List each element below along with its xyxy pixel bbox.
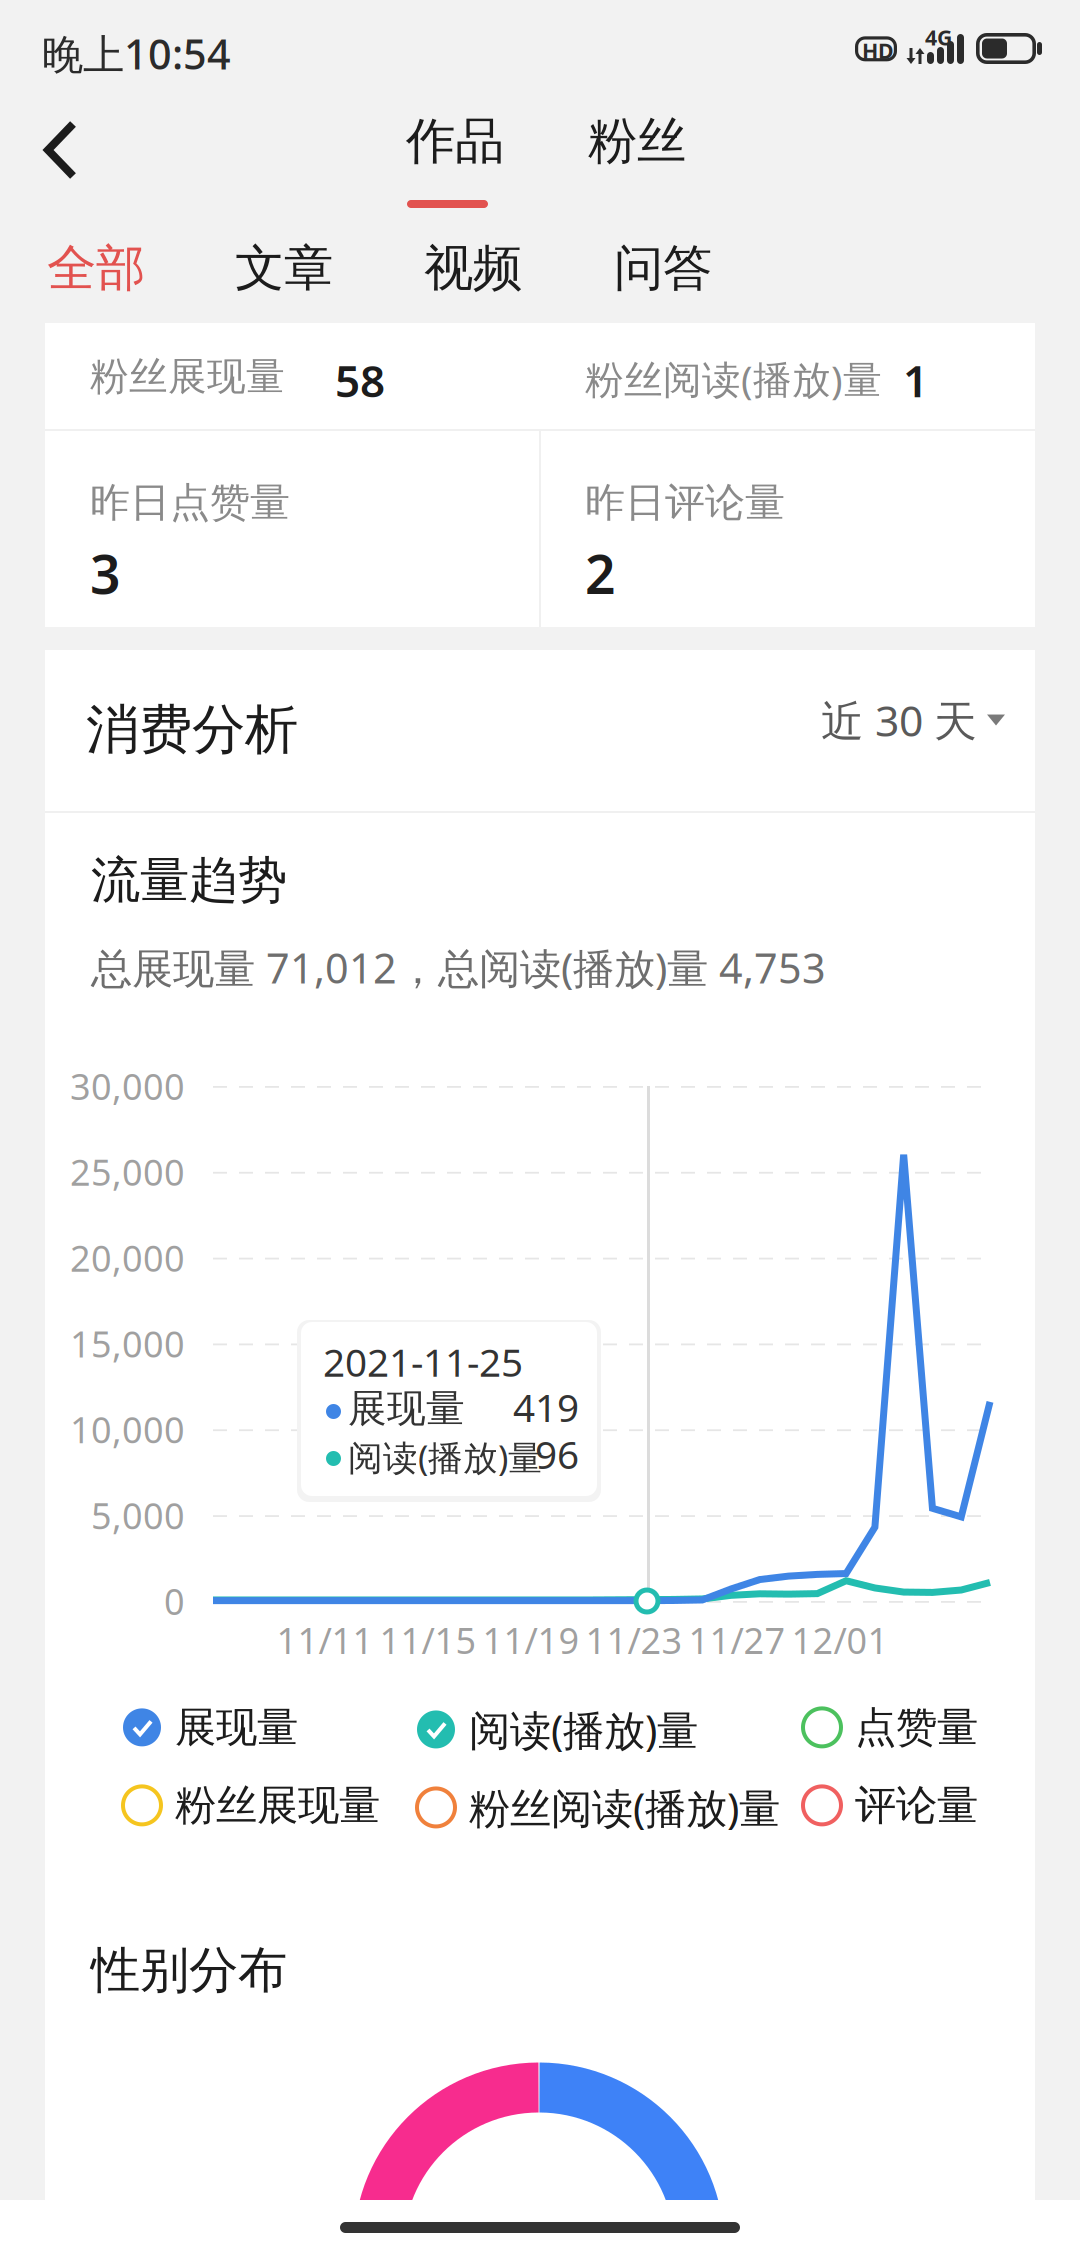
staticText: 粉丝展现量	[175, 1780, 380, 1831]
staticText: 3	[90, 538, 121, 609]
staticText: 粉丝	[588, 111, 686, 172]
button[interactable]: 粉丝展现量	[123, 1780, 423, 1831]
staticText: 总展现量 71,012，总阅读(播放)量 4,753	[91, 940, 826, 995]
staticText: 11/27	[688, 1616, 785, 1664]
button[interactable]: 近 30 天	[805, 680, 1021, 760]
staticText: HD	[862, 36, 894, 65]
staticText: 昨日点赞量	[90, 478, 290, 527]
button[interactable]: 阅读(播放)量	[417, 1702, 747, 1757]
staticText: 12/01	[791, 1616, 888, 1664]
button[interactable]: 文章	[235, 218, 353, 319]
staticText: 96	[535, 1428, 579, 1480]
staticText: 流量趋势	[91, 850, 287, 911]
staticText: 20,000	[70, 1234, 185, 1282]
staticText: 展现量	[348, 1385, 465, 1432]
staticText: 昨日评论量	[585, 478, 785, 527]
button[interactable]: 全部	[47, 218, 165, 319]
staticText: 15,000	[70, 1320, 185, 1367]
staticText: 视频	[424, 238, 522, 299]
staticText: 25,000	[70, 1148, 185, 1196]
staticText: 性别分布	[91, 1940, 287, 2001]
staticText: 粉丝阅读(播放)量	[585, 353, 882, 404]
staticText: 问答	[614, 238, 712, 299]
button[interactable]: 粉丝阅读(播放)量	[417, 1780, 797, 1835]
staticText: 粉丝阅读(播放)量	[469, 1780, 780, 1835]
staticText: 11/23	[585, 1616, 682, 1664]
staticText: 粉丝展现量	[90, 353, 285, 400]
staticText: 阅读(播放)量	[348, 1434, 543, 1480]
staticText: 0	[164, 1577, 185, 1625]
button[interactable]: 视频	[424, 218, 542, 319]
staticText: 11/19	[482, 1616, 579, 1664]
button[interactable]: 点赞量	[803, 1702, 1033, 1753]
staticText: 10,000	[70, 1405, 185, 1453]
staticText: 11/11	[276, 1616, 373, 1664]
staticText: 点赞量	[855, 1702, 978, 1753]
staticText: 全部	[47, 238, 145, 299]
staticText: 419	[513, 1381, 579, 1433]
staticText: 评论量	[855, 1780, 978, 1831]
staticText: 2021-11-25	[323, 1336, 523, 1387]
staticText: 2	[585, 538, 616, 609]
staticText: 30,000	[70, 1062, 185, 1110]
staticText: 展现量	[175, 1702, 298, 1753]
staticText: 1	[903, 351, 928, 409]
button[interactable]: 问答	[614, 218, 732, 319]
staticText: 5,000	[91, 1491, 185, 1539]
staticText: 4G	[925, 23, 952, 51]
staticText: 晚上10:54	[42, 26, 231, 81]
button[interactable]: 作品	[392, 96, 512, 218]
staticText: 消费分析	[86, 697, 298, 762]
button[interactable]: 粉丝	[574, 96, 684, 218]
button[interactable]: 评论量	[803, 1780, 1033, 1831]
staticText: 阅读(播放)量	[469, 1702, 698, 1757]
staticText: 11/15	[379, 1616, 476, 1664]
staticText: 文章	[235, 238, 333, 299]
button[interactable]: 返回	[0, 96, 112, 218]
staticText: 近 30 天	[821, 692, 977, 748]
staticText: 58	[335, 351, 385, 409]
staticText: 作品	[406, 111, 504, 172]
button[interactable]: 展现量	[123, 1702, 383, 1753]
